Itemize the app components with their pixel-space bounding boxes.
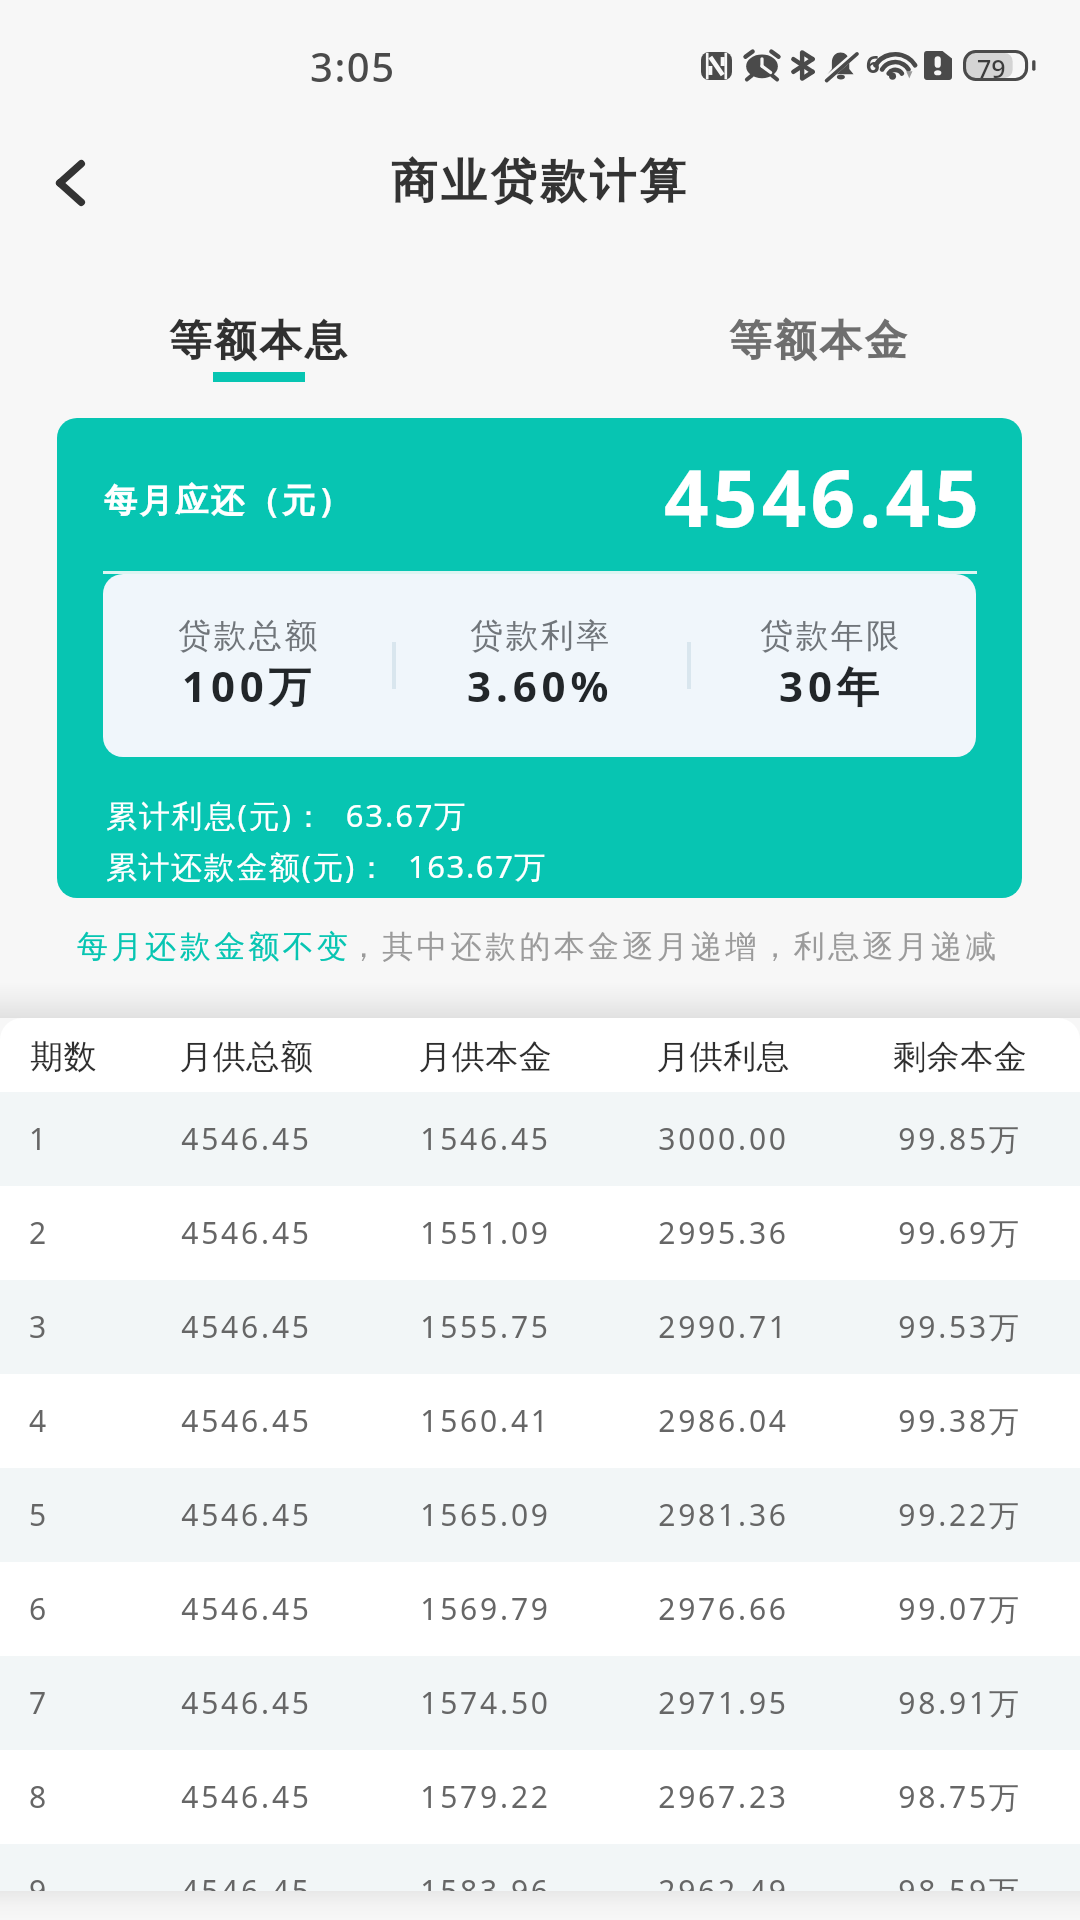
staticText: 99.69万 (898, 1212, 1022, 1253)
staticText: 剩余本金 (893, 1036, 1027, 1078)
staticText: 99.85万 (898, 1118, 1022, 1159)
staticText: 100万 (182, 657, 316, 714)
staticText: 贷款利率 (470, 615, 612, 657)
button[interactable]: 6 (0, 1562, 1080, 1656)
staticText: 3:05 (310, 39, 396, 93)
staticText: 月供利息 (656, 1036, 790, 1078)
button[interactable]: 5 (0, 1468, 1080, 1562)
staticText: 4546.45 (181, 1494, 312, 1535)
staticText: 2995.36 (658, 1212, 789, 1253)
staticText: 4546.45 (181, 1212, 312, 1253)
staticText: 贷款总额 (178, 615, 320, 657)
staticText: 99.22万 (898, 1494, 1022, 1535)
staticText: 累计利息(元)： 63.67万 (106, 794, 468, 836)
staticText: 99.38万 (898, 1400, 1022, 1441)
staticText: 6 (866, 47, 880, 79)
staticText: 等额本金 (729, 315, 910, 368)
staticText: 4546.45 (664, 444, 984, 550)
staticText: 1565.09 (420, 1494, 551, 1535)
staticText: 贷款年限 (760, 615, 902, 657)
staticText: 4546.45 (181, 1118, 312, 1159)
staticText: 2990.71 (658, 1306, 789, 1347)
staticText: 1583.96 (420, 1870, 551, 1911)
staticText: 1555.75 (420, 1306, 551, 1347)
staticText: 2962.49 (658, 1870, 789, 1911)
staticText: 4 (29, 1400, 49, 1441)
staticText: 1560.41 (420, 1400, 551, 1441)
staticText: 每月应还（元） (104, 480, 354, 522)
staticText: 7 (29, 1682, 49, 1723)
staticText: 4546.45 (181, 1776, 312, 1817)
button[interactable]: 9 (0, 1844, 1080, 1920)
button[interactable]: 7 (0, 1656, 1080, 1750)
staticText: 1574.50 (420, 1682, 551, 1723)
staticText: ，其中还款的本金逐月递增，利息逐月递减 (348, 927, 1000, 966)
staticText: 累计还款金额(元)： 163.67万 (106, 845, 548, 887)
button[interactable]: 4 (0, 1374, 1080, 1468)
button[interactable]: 等额本金 (679, 296, 959, 394)
button[interactable]: 等额本息 (119, 296, 399, 394)
button[interactable]: 1 (0, 1092, 1080, 1186)
staticText: 1 (29, 1118, 49, 1159)
staticText: 2971.95 (658, 1682, 789, 1723)
staticText: 8 (29, 1776, 49, 1817)
staticText: 商业贷款计算 (391, 153, 689, 211)
staticText: 3000.00 (658, 1118, 789, 1159)
staticText: 4546.45 (181, 1306, 312, 1347)
staticText: 月供本金 (418, 1036, 552, 1078)
staticText: 9 (29, 1870, 49, 1911)
button[interactable]: Back (24, 137, 116, 229)
staticText: 99.07万 (898, 1588, 1022, 1629)
staticText: 2967.23 (658, 1776, 789, 1817)
staticText: 4546.45 (181, 1588, 312, 1629)
staticText: 5 (29, 1494, 49, 1535)
staticText: 每月还款金额不变 (77, 927, 352, 966)
staticText: 2 (29, 1212, 49, 1253)
staticText: 1579.22 (420, 1776, 551, 1817)
staticText: 99.53万 (898, 1306, 1022, 1347)
staticText: 月供总额 (179, 1036, 313, 1078)
staticText: 3.60% (467, 657, 614, 714)
staticText: 2981.36 (658, 1494, 789, 1535)
staticText: 4546.45 (181, 1400, 312, 1441)
button[interactable]: 2 (0, 1186, 1080, 1280)
staticText: 1569.79 (420, 1588, 551, 1629)
staticText: 2976.66 (658, 1588, 789, 1629)
staticText: 98.75万 (898, 1776, 1022, 1817)
staticText: 98.59万 (898, 1870, 1022, 1911)
button[interactable]: 8 (0, 1750, 1080, 1844)
staticText: 1546.45 (420, 1118, 551, 1159)
staticText: 98.91万 (898, 1682, 1022, 1723)
button[interactable]: 3 (0, 1280, 1080, 1374)
staticText: 6 (29, 1588, 49, 1629)
staticText: 3 (29, 1306, 49, 1347)
staticText: 1551.09 (420, 1212, 551, 1253)
staticText: 期数 (30, 1036, 97, 1078)
staticText: 4546.45 (181, 1870, 312, 1911)
staticText: 4546.45 (181, 1682, 312, 1723)
staticText: 79 (977, 51, 1006, 82)
staticText: 等额本息 (169, 315, 350, 368)
staticText: 30年 (779, 657, 884, 714)
staticText: 2986.04 (658, 1400, 789, 1441)
